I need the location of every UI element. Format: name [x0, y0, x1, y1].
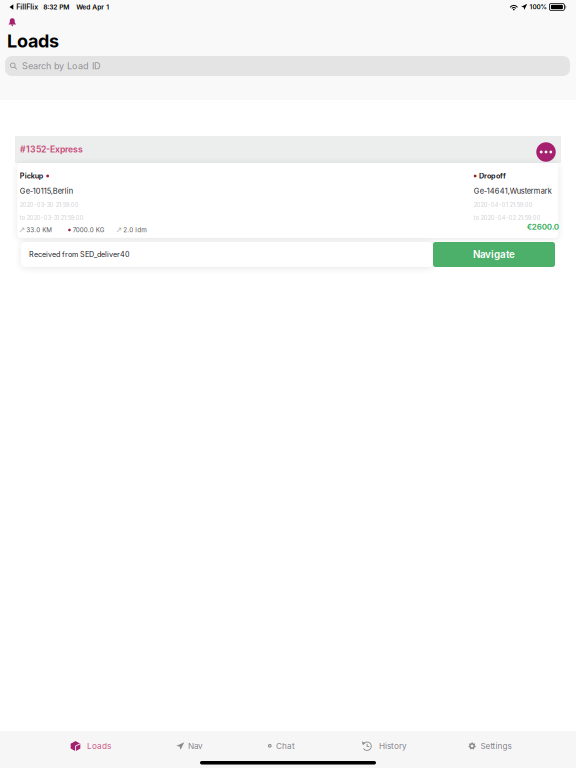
staticText: Search by Load ID [22, 60, 101, 71]
staticText: Ge-10115,Berlin [20, 186, 73, 195]
staticText: to 2020-04-02 21:59:00 [474, 215, 541, 221]
button[interactable]: More options [534, 137, 558, 161]
staticText: Pickup [20, 172, 44, 180]
staticText: to 2020-03-31 21:59:00 [20, 215, 84, 221]
staticText: 7000.0 KG [73, 226, 105, 234]
staticText: €2600.0 [527, 222, 559, 232]
staticText: Chat [276, 741, 295, 751]
staticText: 100% [529, 3, 546, 11]
staticText: Ge-14641,Wustermark [474, 186, 552, 195]
staticText: 2020-04-01 21:59:00 [474, 202, 533, 208]
staticText: 2.0 ldm [123, 226, 146, 234]
staticText: 33.0 KM [26, 226, 52, 234]
staticText: Navigate [473, 249, 515, 260]
staticText: History [379, 741, 407, 751]
staticText: Received from SED_deliver40 [29, 250, 130, 259]
button[interactable]: Chat [267, 738, 295, 754]
staticText: #1352-Express [20, 144, 83, 155]
button[interactable]: Nav [176, 738, 203, 754]
staticText: Wed Apr 1 [76, 3, 109, 11]
staticText: Nav [188, 741, 203, 751]
staticText: 8:32 PM [43, 3, 69, 11]
button[interactable]: History [362, 738, 407, 754]
button[interactable]: Loads [70, 738, 111, 754]
staticText: Loads [7, 30, 59, 52]
button[interactable]: Settings [468, 738, 512, 754]
staticText: 2020-03-30 21:59:00 [20, 202, 79, 208]
staticText: FillFlix [16, 3, 38, 11]
staticText: Dropoff [479, 172, 506, 180]
staticText: Loads [87, 741, 111, 751]
button[interactable]: Navigate [433, 242, 555, 267]
staticText: Settings [481, 741, 512, 751]
